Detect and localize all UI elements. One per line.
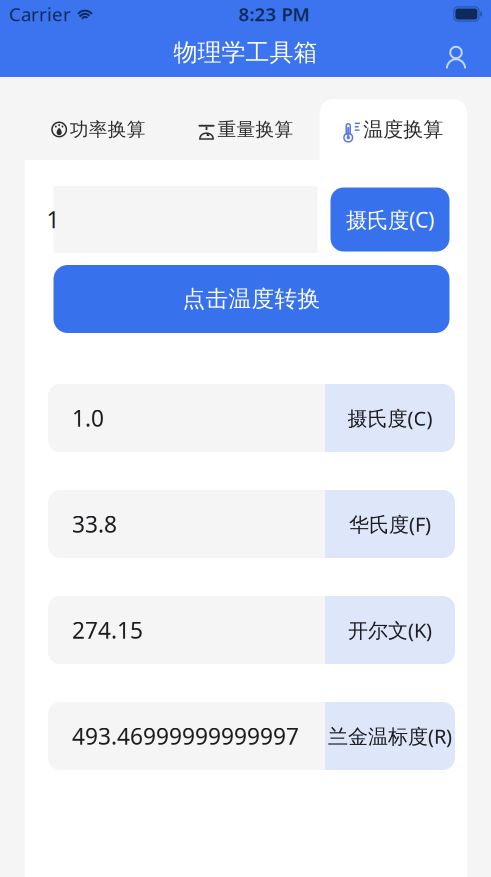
button[interactable]: 温度换算 xyxy=(320,99,467,160)
staticText: 功率换算 xyxy=(70,118,146,141)
button[interactable]: 功率换算 xyxy=(25,99,172,160)
staticText: 温度换算 xyxy=(363,117,443,142)
staticText: 华氏度(F) xyxy=(349,511,431,537)
staticText: 物理学工具箱 xyxy=(173,38,317,67)
staticText: Carrier xyxy=(9,2,71,26)
staticText: 摄氏度(C) xyxy=(347,405,432,431)
button[interactable]: Account xyxy=(435,31,477,73)
staticText: 开尔文(K) xyxy=(348,617,432,643)
staticText: 274.15 xyxy=(72,615,143,645)
staticText: 兰金温标度(R) xyxy=(328,723,452,749)
staticText: 摄氏度(C) xyxy=(346,205,434,234)
staticText: 点击温度转换 xyxy=(182,285,320,313)
staticText: 1.0 xyxy=(72,403,104,433)
button[interactable]: 重量换算 xyxy=(172,99,320,160)
staticText: 重量换算 xyxy=(217,118,293,141)
button[interactable]: 摄氏度(C) xyxy=(330,187,449,251)
staticText: 8:23 PM xyxy=(238,2,309,26)
staticText: 33.8 xyxy=(72,509,117,539)
staticText: 1 xyxy=(46,204,59,234)
button[interactable]: 点击温度转换 xyxy=(53,265,449,333)
staticText: 493.46999999999997 xyxy=(72,721,299,751)
